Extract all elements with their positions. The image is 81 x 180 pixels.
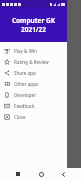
button[interactable]: Developer: [0, 89, 67, 100]
button[interactable]: Feedback: [0, 100, 67, 111]
button[interactable]: Play & Win: [0, 45, 67, 56]
staticText: Rating & Review: [14, 59, 49, 65]
button[interactable]: Share app: [0, 67, 67, 78]
staticText: Close: [14, 114, 26, 120]
staticText: Feedback: [14, 103, 35, 109]
staticText: Share app: [14, 70, 36, 76]
button[interactable]: Rating & Review: [0, 56, 67, 67]
button[interactable]: Close: [0, 111, 67, 122]
staticText: Other apps: [14, 81, 39, 87]
button[interactable]: Other apps: [0, 78, 67, 89]
button[interactable]: Recent apps: [13, 169, 23, 179]
staticText: Developer: [14, 92, 37, 98]
button[interactable]: Computer GK 2021/22: [0, 8, 67, 42]
staticText: Computer GK 2021/22: [0, 16, 67, 34]
button[interactable]: Back: [58, 169, 68, 179]
button[interactable]: Home: [36, 169, 46, 179]
staticText: Play & Win: [14, 48, 37, 54]
